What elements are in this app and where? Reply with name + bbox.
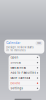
button[interactable]: Add to Favourites: [9, 70, 40, 75]
button[interactable]: Mute Calendar: [9, 76, 40, 80]
button[interactable]: Settings: [9, 86, 40, 91]
staticText: now: [37, 42, 41, 45]
staticText: Mark as Read: [10, 66, 26, 69]
staticText: Delete: [10, 82, 20, 85]
staticText: Snooze: [10, 61, 21, 64]
staticText: Calendar: [6, 41, 20, 45]
staticText: Add to Favourites: [10, 71, 35, 74]
staticText: Mute Calendar: [10, 76, 30, 80]
staticText: Open: [10, 56, 18, 59]
button[interactable]: Open: [9, 55, 40, 60]
button[interactable]: Mark as Read: [9, 65, 40, 70]
button[interactable]: Delete: [9, 81, 40, 86]
button[interactable]: Snooze: [9, 60, 40, 65]
staticText: Design review starts in 10 minutes: [6, 45, 33, 52]
staticText: Settings: [10, 87, 22, 90]
